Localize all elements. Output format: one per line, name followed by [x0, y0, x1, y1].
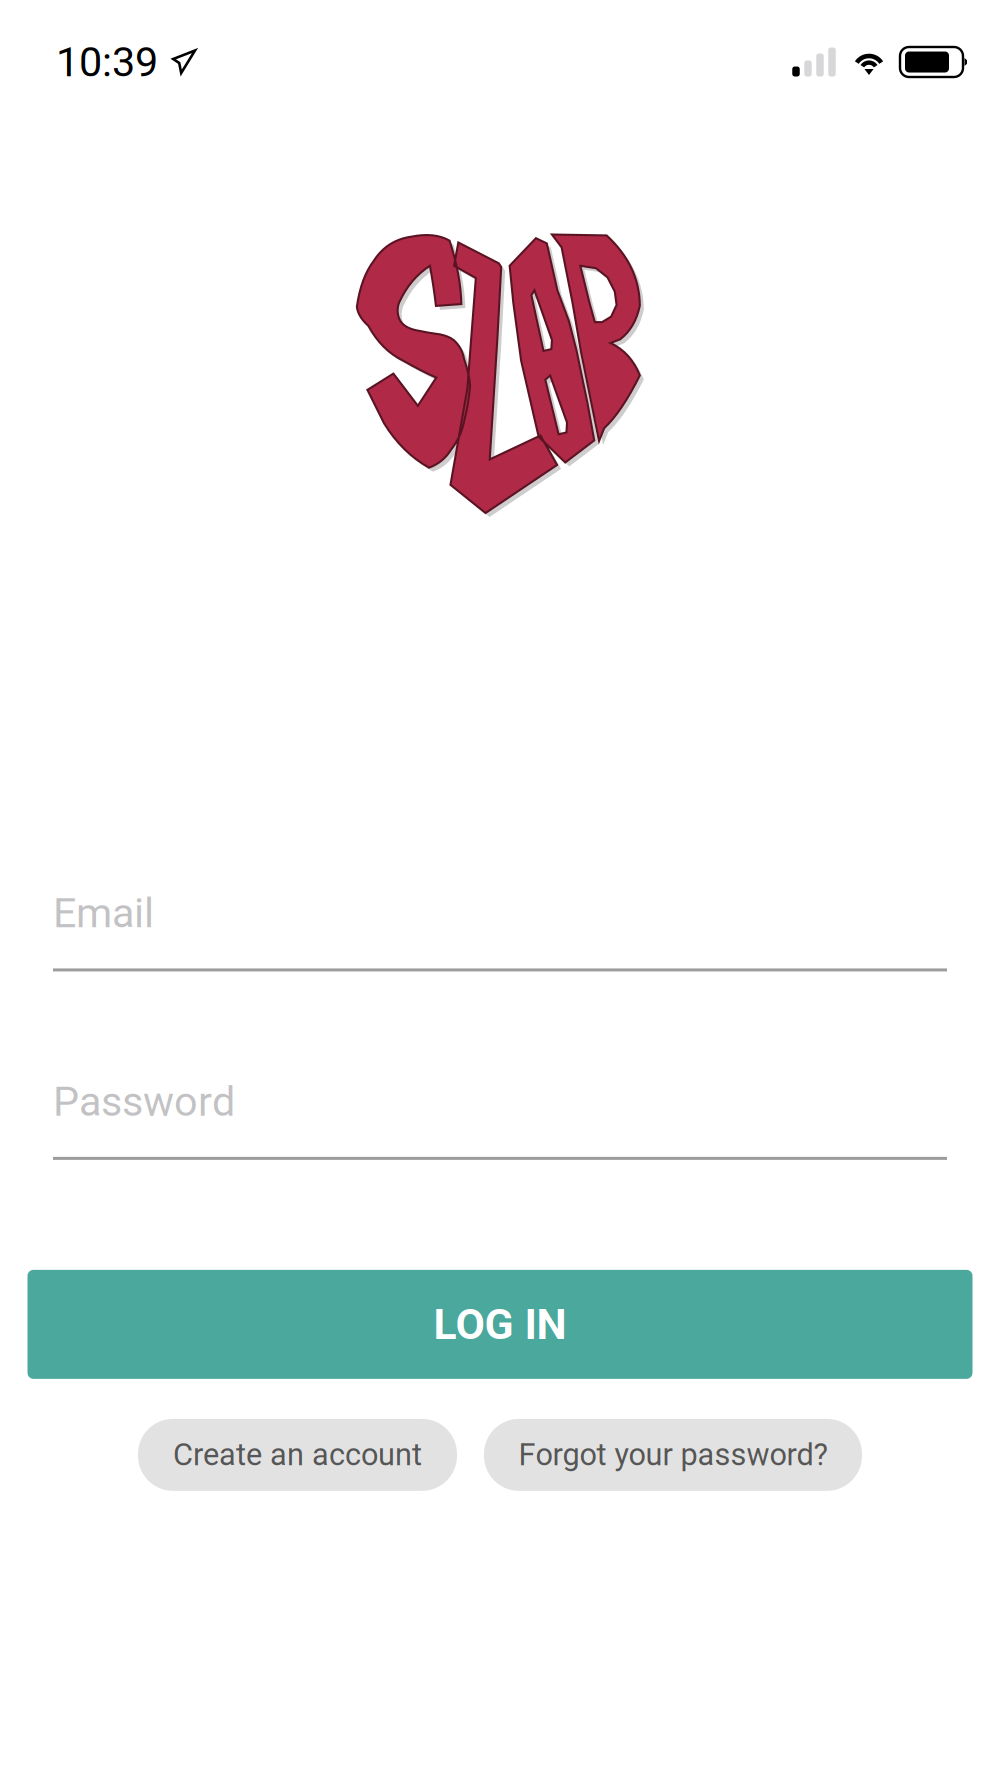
button[interactable]: Create an account [138, 1419, 457, 1491]
staticText: Email [53, 889, 154, 937]
staticText: Create an account [173, 1437, 422, 1473]
button[interactable]: Forgot your password? [484, 1419, 862, 1491]
button[interactable]: LOG IN [27, 1270, 972, 1379]
staticText: 10:39 [56, 38, 158, 86]
staticText: Password [53, 1077, 235, 1126]
staticText: Forgot your password? [518, 1437, 827, 1473]
staticText: LOG IN [433, 1299, 566, 1349]
